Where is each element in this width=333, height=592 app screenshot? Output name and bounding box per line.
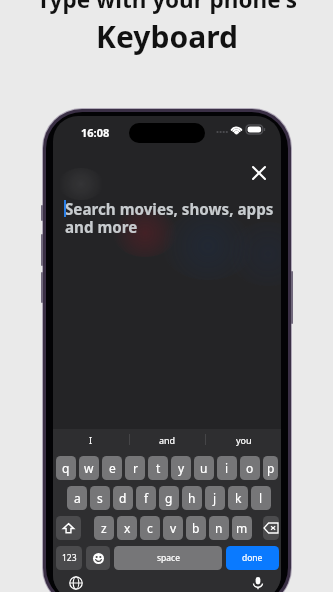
- button[interactable]: Switch language: [69, 576, 83, 590]
- button[interactable]: n: [209, 516, 229, 540]
- staticText: q: [62, 460, 70, 476]
- staticText: v: [170, 520, 177, 536]
- button[interactable]: p: [263, 456, 278, 480]
- button[interactable]: w: [79, 456, 99, 480]
- staticText: w: [84, 460, 94, 476]
- staticText: Keyboard: [96, 16, 238, 57]
- staticText: a: [74, 490, 81, 506]
- staticText: k: [235, 490, 242, 506]
- staticText: u: [200, 460, 208, 476]
- button[interactable]: Dictation: [251, 576, 265, 590]
- button[interactable]: o: [240, 456, 260, 480]
- button[interactable]: z: [94, 516, 114, 540]
- button[interactable]: and: [130, 431, 205, 449]
- button[interactable]: e: [102, 456, 122, 480]
- staticText: Type with your phone's: [37, 0, 297, 15]
- button[interactable]: j: [205, 486, 225, 510]
- staticText: Search movies, shows, apps and more: [65, 199, 275, 238]
- staticText: y: [178, 460, 185, 476]
- staticText: z: [101, 520, 107, 536]
- button[interactable]: Close search: [246, 160, 272, 186]
- button[interactable]: Emoji: [86, 546, 110, 570]
- staticText: r: [133, 460, 138, 476]
- button[interactable]: m: [232, 516, 252, 540]
- button[interactable]: 123: [56, 546, 82, 570]
- button[interactable]: l: [251, 486, 271, 510]
- button[interactable]: q: [56, 456, 76, 480]
- button[interactable]: d: [113, 486, 133, 510]
- staticText: h: [188, 490, 196, 506]
- button[interactable]: you: [206, 431, 281, 449]
- staticText: b: [192, 520, 200, 536]
- button[interactable]: t: [148, 456, 168, 480]
- button[interactable]: Shift: [56, 516, 81, 540]
- staticText: n: [215, 520, 223, 536]
- button[interactable]: u: [194, 456, 214, 480]
- button[interactable]: i: [217, 456, 237, 480]
- button[interactable]: k: [228, 486, 248, 510]
- button[interactable]: Backspace: [263, 516, 279, 540]
- staticText: l: [259, 490, 263, 506]
- button[interactable]: b: [186, 516, 206, 540]
- button[interactable]: f: [136, 486, 156, 510]
- staticText: 123: [62, 552, 77, 564]
- staticText: x: [124, 520, 131, 536]
- button[interactable]: x: [117, 516, 137, 540]
- staticText: I: [89, 434, 93, 446]
- staticText: space: [157, 552, 180, 564]
- button[interactable]: I: [53, 431, 129, 449]
- button[interactable]: space: [114, 546, 222, 570]
- staticText: d: [119, 490, 127, 506]
- staticText: f: [144, 490, 149, 506]
- button[interactable]: c: [140, 516, 160, 540]
- button[interactable]: done: [226, 546, 279, 570]
- staticText: i: [225, 460, 229, 476]
- button[interactable]: y: [171, 456, 191, 480]
- staticText: e: [109, 460, 116, 476]
- button[interactable]: r: [125, 456, 145, 480]
- staticText: 16:08: [81, 125, 110, 140]
- button[interactable]: h: [182, 486, 202, 510]
- button[interactable]: v: [163, 516, 183, 540]
- staticText: o: [246, 460, 254, 476]
- staticText: you: [236, 434, 252, 446]
- staticText: t: [156, 460, 161, 476]
- staticText: c: [147, 520, 153, 536]
- staticText: s: [97, 490, 103, 506]
- staticText: m: [236, 520, 248, 536]
- staticText: and: [159, 434, 176, 446]
- button[interactable]: s: [90, 486, 110, 510]
- button[interactable]: g: [159, 486, 179, 510]
- staticText: g: [165, 490, 173, 506]
- staticText: j: [213, 490, 217, 506]
- staticText: p: [267, 460, 275, 476]
- staticText: done: [242, 552, 263, 564]
- button[interactable]: a: [67, 486, 87, 510]
